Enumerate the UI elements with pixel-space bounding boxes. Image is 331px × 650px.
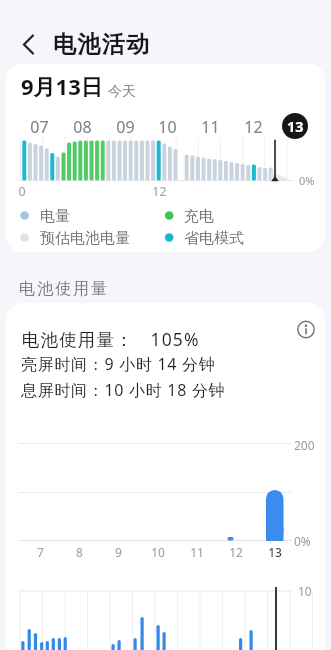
- staticText: 0%: [299, 173, 315, 188]
- staticText: 息屏时间：10 小时 18 分钟: [21, 379, 226, 401]
- staticText: 亮屏时间：9 小时 14 分钟: [21, 353, 216, 375]
- staticText: 13: [287, 116, 304, 136]
- staticText: 8: [76, 544, 83, 560]
- staticText: 7: [37, 544, 44, 560]
- staticText: 10: [151, 544, 165, 560]
- staticText: 12: [244, 116, 263, 138]
- staticText: 电量: [40, 207, 70, 226]
- staticText: 电池使用量: [18, 279, 108, 299]
- staticText: 预估电池电量: [40, 229, 130, 248]
- staticText: 11: [190, 544, 204, 560]
- staticText: 0%: [294, 533, 311, 549]
- button[interactable]: 13: [282, 113, 308, 139]
- staticText: 省电模式: [184, 229, 244, 248]
- staticText: 12: [152, 183, 167, 200]
- staticText: 今天: [108, 83, 136, 101]
- staticText: 9: [115, 544, 122, 560]
- staticText: 08: [73, 116, 92, 138]
- staticText: 电池活动: [52, 30, 150, 59]
- staticText: 11: [201, 116, 220, 138]
- button[interactable]: [12, 24, 52, 64]
- staticText: 9月13日: [21, 71, 103, 101]
- staticText: 电池使用量： 105%: [22, 327, 200, 351]
- staticText: 07: [30, 116, 49, 138]
- staticText: 13: [268, 544, 282, 560]
- staticText: 12: [229, 544, 243, 560]
- staticText: 200: [294, 437, 315, 453]
- staticText: 10: [298, 583, 312, 599]
- staticText: 0: [18, 183, 26, 200]
- button[interactable]: [292, 316, 320, 344]
- staticText: 充电: [184, 207, 214, 226]
- staticText: 09: [116, 116, 135, 138]
- staticText: 10: [158, 116, 177, 138]
